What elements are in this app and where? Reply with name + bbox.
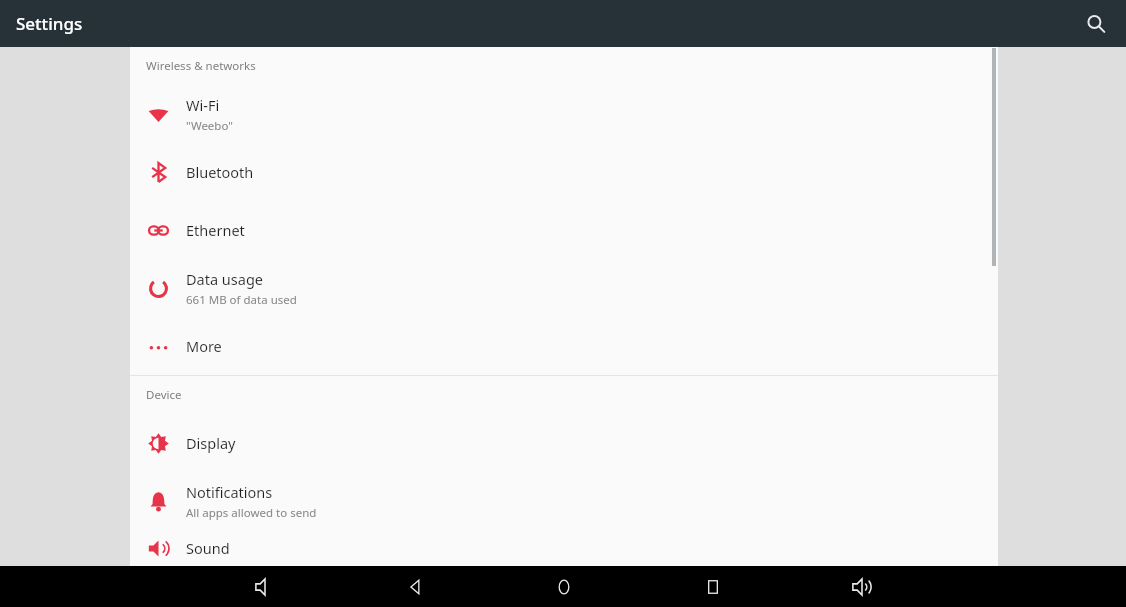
staticText: All apps allowed to send	[186, 505, 317, 521]
staticText: Device	[146, 387, 182, 403]
staticText: Display	[186, 433, 236, 453]
staticText: Wireless & networks	[146, 58, 256, 74]
button[interactable]: Recents	[638, 566, 787, 607]
button[interactable]: Notifications	[130, 472, 998, 530]
staticText: "Weebo"	[186, 118, 233, 134]
button[interactable]: Bluetooth	[130, 143, 998, 201]
button[interactable]: Search	[1076, 4, 1116, 44]
button[interactable]: More	[130, 317, 998, 375]
staticText: Data usage	[186, 269, 263, 289]
staticText: Wi-Fi	[186, 95, 220, 115]
staticText: 661 MB of data used	[186, 292, 297, 308]
staticText: Sound	[186, 538, 230, 558]
button[interactable]: Display	[130, 414, 998, 472]
staticText: Settings	[16, 12, 83, 35]
staticText: Ethernet	[186, 220, 245, 240]
button[interactable]: Wi-Fi	[130, 85, 998, 143]
button[interactable]: Back	[340, 566, 489, 607]
button[interactable]: Volume up	[787, 566, 936, 607]
button[interactable]: Home	[489, 566, 638, 607]
button[interactable]: Sound	[130, 530, 998, 566]
button[interactable]: Data usage	[130, 259, 998, 317]
staticText: Notifications	[186, 482, 273, 502]
staticText: Bluetooth	[186, 162, 254, 182]
button[interactable]: Volume down	[190, 566, 340, 607]
button[interactable]: Ethernet	[130, 201, 998, 259]
staticText: More	[186, 336, 222, 356]
